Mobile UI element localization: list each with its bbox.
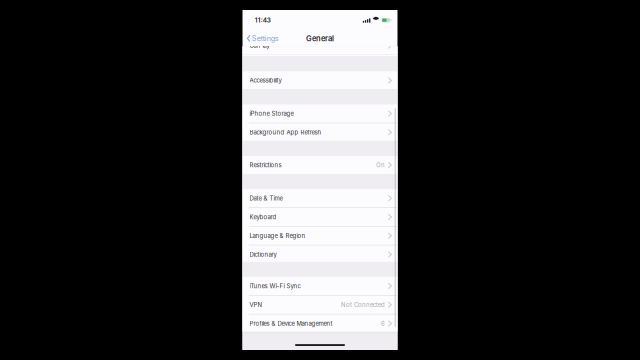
staticText: Language & Region (249, 232, 305, 239)
button[interactable]: Restrictions (242, 156, 397, 174)
button[interactable]: Language & Region (242, 227, 397, 245)
staticText: On (376, 161, 385, 169)
staticText: Settings (252, 34, 279, 43)
button[interactable]: Settings (242, 34, 279, 43)
staticText: Not Connected (341, 301, 385, 308)
staticText: Accessibility (249, 77, 281, 84)
staticText: Profiles & Device Management (249, 320, 332, 327)
staticText: iTunes Wi-Fi Sync (249, 282, 300, 290)
staticText: Dictionary (249, 251, 276, 258)
button[interactable]: iPhone Storage (242, 104, 397, 123)
staticText: Date & Time (249, 195, 282, 202)
staticText: Keyboard (249, 213, 276, 221)
button[interactable]: iTunes Wi-Fi Sync (242, 277, 397, 295)
staticText: Restrictions (249, 161, 281, 169)
button[interactable]: Profiles & Device Management (242, 314, 397, 333)
staticText: iPhone Storage (249, 110, 293, 117)
staticText: 6 (381, 320, 385, 327)
button[interactable]: VPN (242, 296, 397, 314)
staticText: VPN (249, 301, 262, 308)
button[interactable]: CarPlay (242, 36, 397, 55)
staticText: 11:43 (255, 16, 271, 24)
button[interactable]: Dictionary (242, 245, 397, 263)
button[interactable]: Background App Refresh (242, 123, 397, 141)
staticText: Background App Refresh (249, 129, 321, 136)
staticText: CarPlay (249, 42, 269, 49)
button[interactable]: Keyboard (242, 208, 397, 226)
staticText: General (306, 34, 334, 43)
button[interactable]: Date & Time (242, 189, 397, 207)
button[interactable]: Accessibility (242, 71, 397, 89)
